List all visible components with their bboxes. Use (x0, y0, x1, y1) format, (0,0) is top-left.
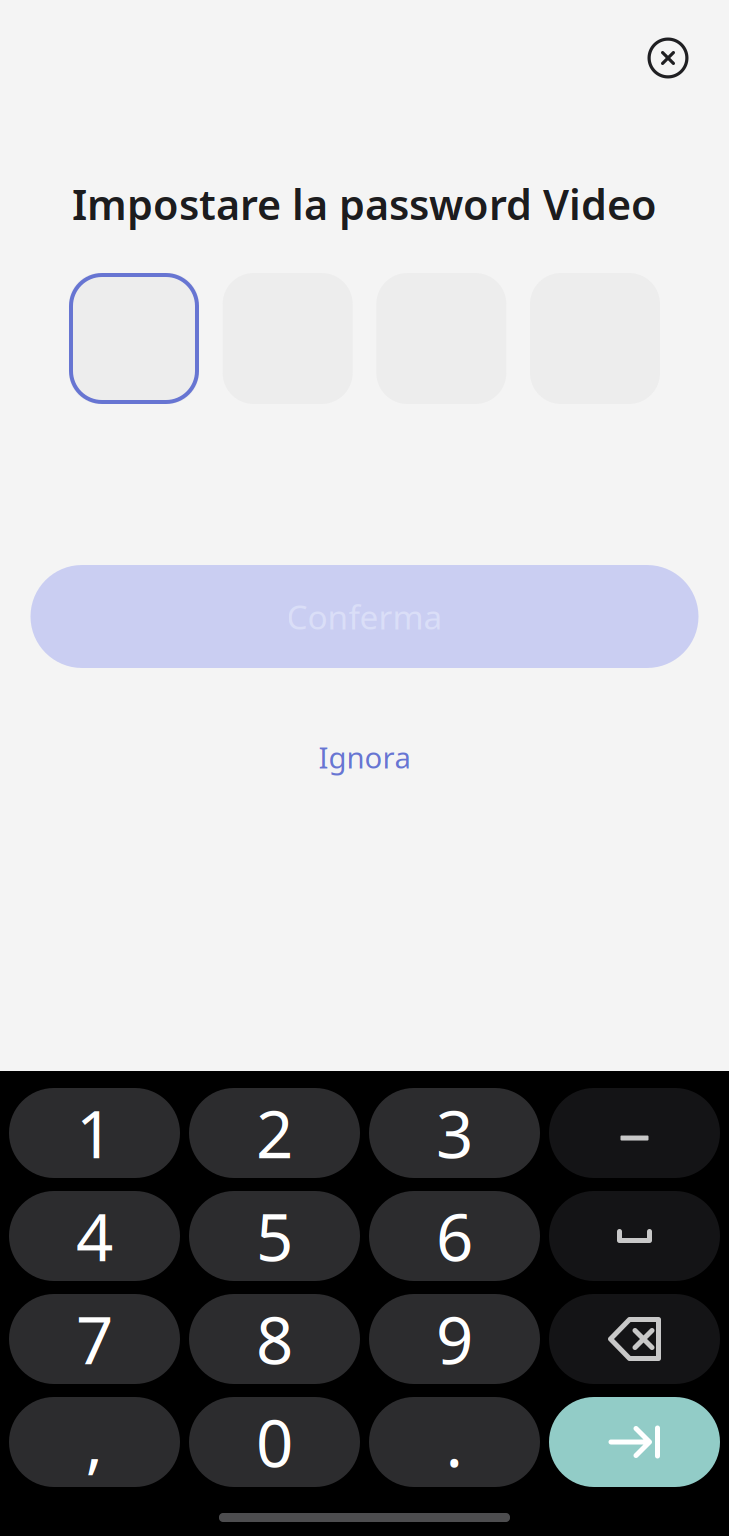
button[interactable]: Delete (549, 1294, 720, 1384)
button[interactable]: , (9, 1397, 180, 1487)
button[interactable]: 3 (369, 1088, 540, 1178)
button[interactable]: Space (549, 1191, 720, 1281)
staticText: 7 (76, 1296, 113, 1382)
button[interactable]: Next (549, 1397, 720, 1487)
staticText: 2 (256, 1090, 293, 1176)
button[interactable]: . (369, 1397, 540, 1487)
staticText: . (445, 1399, 463, 1485)
button[interactable]: 4 (9, 1191, 180, 1281)
staticText: Conferma (286, 594, 442, 639)
button[interactable]: Conferma (30, 565, 698, 668)
staticText: , (85, 1399, 103, 1485)
button[interactable]: 5 (189, 1191, 360, 1281)
staticText: 0 (256, 1399, 293, 1485)
staticText: 3 (436, 1090, 473, 1176)
staticText: 8 (256, 1296, 293, 1382)
staticText: 9 (436, 1296, 473, 1382)
staticText: 6 (436, 1193, 473, 1279)
staticText: Impostare la password Video (72, 177, 657, 231)
staticText: 4 (76, 1193, 113, 1279)
button[interactable]: 0 (189, 1397, 360, 1487)
button[interactable]: 6 (369, 1191, 540, 1281)
button[interactable]: Dash (549, 1088, 720, 1178)
button[interactable]: 7 (9, 1294, 180, 1384)
button[interactable]: Ignora (318, 744, 410, 770)
staticText: 5 (256, 1193, 293, 1279)
button[interactable]: 1 (9, 1088, 180, 1178)
button[interactable]: 8 (189, 1294, 360, 1384)
button[interactable]: 2 (189, 1088, 360, 1178)
staticText: Ignora (318, 737, 410, 776)
button[interactable]: 9 (369, 1294, 540, 1384)
button[interactable]: Close (640, 30, 696, 86)
staticText: 1 (76, 1090, 113, 1176)
